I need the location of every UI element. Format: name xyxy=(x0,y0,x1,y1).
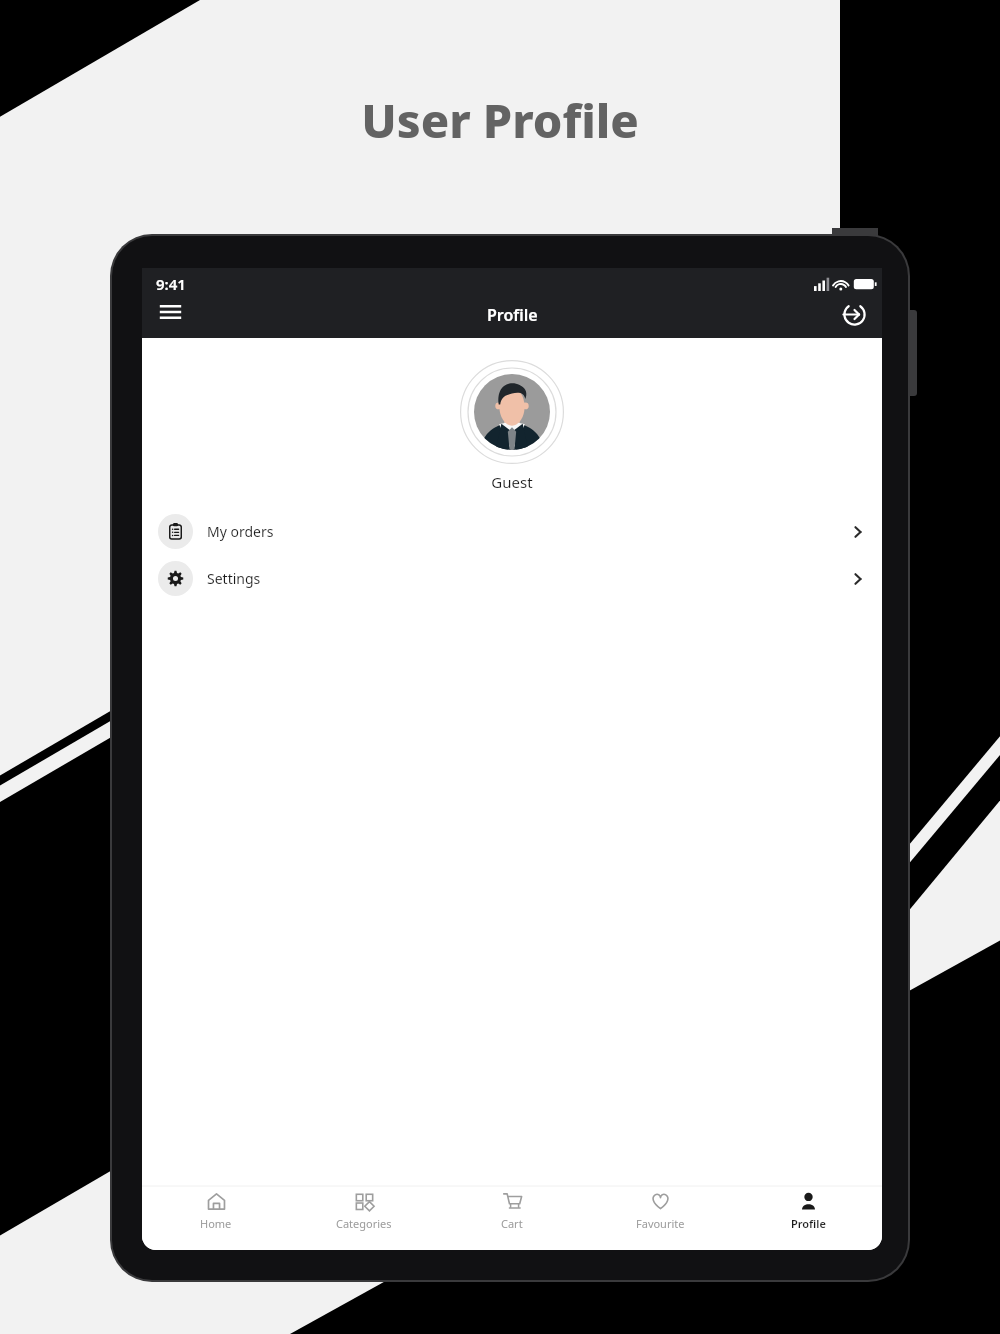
staticText: Profile xyxy=(487,304,538,326)
button[interactable]: Settings xyxy=(142,555,882,602)
staticText: Cart xyxy=(501,1216,523,1231)
staticText: Home xyxy=(200,1216,232,1231)
staticText: Categories xyxy=(336,1216,392,1231)
button[interactable]: My orders xyxy=(142,508,882,555)
button[interactable]: Home xyxy=(142,1192,290,1250)
staticText: 9:41 xyxy=(156,274,186,294)
staticText: My orders xyxy=(207,522,850,541)
staticText: Favourite xyxy=(636,1216,685,1231)
button[interactable]: Favourite xyxy=(586,1192,734,1250)
staticText: Profile xyxy=(791,1216,826,1231)
staticText: Guest xyxy=(142,472,882,492)
staticText: Settings xyxy=(207,569,850,588)
staticText: User Profile xyxy=(361,88,639,152)
button[interactable]: Cart xyxy=(438,1192,586,1250)
button[interactable]: Menu xyxy=(148,290,192,334)
button[interactable]: Categories xyxy=(290,1192,438,1250)
button[interactable]: Logout xyxy=(832,292,876,336)
button[interactable]: Profile xyxy=(734,1192,882,1250)
